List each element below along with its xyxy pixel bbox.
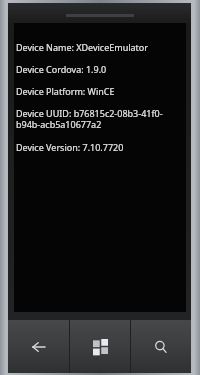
button[interactable]: Start <box>70 320 130 373</box>
staticText: Device Version: 7.10.7720 <box>16 141 124 153</box>
staticText: Device Platform: WinCE <box>16 85 115 97</box>
staticText: Device UUID: b76815c2-08b3-41f0-b94b-acb… <box>16 107 182 131</box>
staticText: Device Name: XDeviceEmulator <box>16 41 149 53</box>
staticText: Device Cordova: 1.9.0 <box>16 63 107 75</box>
button[interactable]: Back <box>8 320 69 373</box>
button[interactable]: Search <box>131 320 191 373</box>
